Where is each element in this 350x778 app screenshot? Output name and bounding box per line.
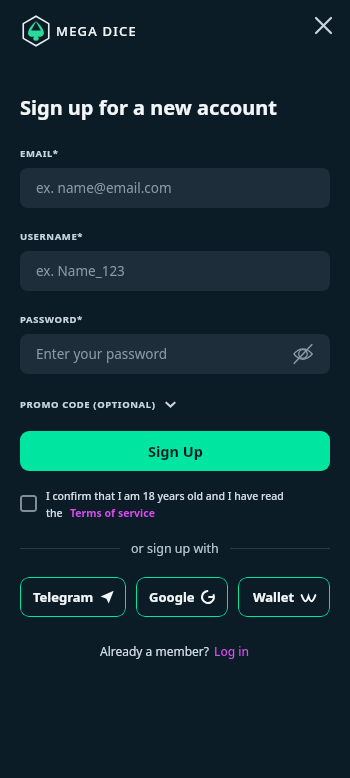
- button[interactable]: Terms of service: [70, 506, 155, 520]
- staticText: PASSWORD*: [20, 313, 83, 326]
- button[interactable]: Show password: [292, 343, 314, 365]
- button[interactable]: Telegram: [20, 577, 126, 617]
- button[interactable]: Close: [310, 12, 336, 38]
- staticText: Enter your password: [36, 345, 168, 363]
- button[interactable]: Log in: [214, 643, 250, 659]
- button[interactable]: Enter your password: [20, 334, 330, 374]
- button[interactable]: ex. name@email.com: [20, 168, 330, 208]
- staticText: Already a member?: [100, 643, 209, 659]
- staticText: USERNAME*: [20, 230, 84, 243]
- button[interactable]: I confirm that I am 18 years old and I h…: [20, 489, 284, 520]
- staticText: Wallet: [253, 588, 295, 606]
- staticText: EMAIL*: [20, 147, 59, 160]
- button[interactable]: Google: [136, 577, 228, 617]
- staticText: Telegram: [33, 588, 94, 606]
- button[interactable]: Sign Up: [20, 431, 330, 471]
- staticText: I confirm that I am 18 years old and I h…: [46, 489, 284, 503]
- button[interactable]: PROMO CODE (OPTIONAL): [20, 398, 177, 411]
- button[interactable]: Wallet: [238, 577, 330, 617]
- staticText: or sign up with: [131, 540, 219, 557]
- button[interactable]: ex. Name_123: [20, 251, 330, 291]
- staticText: the: [46, 506, 63, 520]
- staticText: ex. Name_123: [36, 262, 125, 280]
- staticText: PROMO CODE (OPTIONAL): [20, 398, 156, 411]
- staticText: Google: [149, 588, 195, 606]
- staticText: Sign up for a new account: [20, 94, 277, 121]
- staticText: Sign Up: [148, 441, 203, 461]
- staticText: ex. name@email.com: [36, 179, 172, 197]
- staticText: MEGA DICE: [56, 22, 137, 40]
